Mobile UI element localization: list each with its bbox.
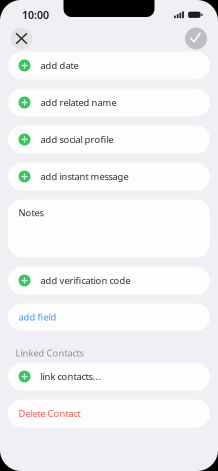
button[interactable]: Cancel <box>10 27 32 49</box>
staticText: add instant message <box>40 170 128 183</box>
button[interactable]: add related name <box>8 88 210 116</box>
staticText: add date <box>40 59 78 72</box>
staticText: add related name <box>40 96 116 109</box>
button[interactable]: add field <box>8 303 210 330</box>
staticText: Delete Contact <box>18 407 80 420</box>
staticText: add verification code <box>40 274 130 287</box>
staticText: link contacts... <box>40 370 101 383</box>
button[interactable]: add verification code <box>8 266 210 294</box>
button[interactable]: link contacts... <box>8 362 210 390</box>
staticText: Linked Contacts <box>15 347 83 359</box>
button[interactable]: Delete Contact <box>8 399 210 427</box>
button[interactable]: Notes <box>8 199 210 257</box>
staticText: Notes <box>18 206 43 219</box>
button[interactable]: Done <box>185 27 207 49</box>
button[interactable]: add social profile <box>8 125 210 153</box>
staticText: add social profile <box>40 133 113 146</box>
button[interactable]: add instant message <box>8 162 210 190</box>
staticText: 10:00 <box>22 8 49 22</box>
button[interactable]: add date <box>8 51 210 79</box>
staticText: add field <box>18 311 56 323</box>
